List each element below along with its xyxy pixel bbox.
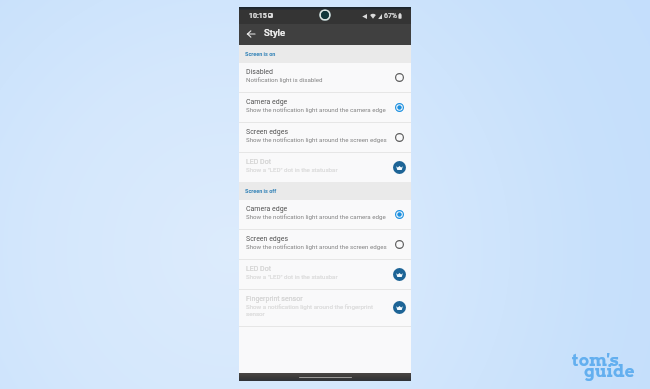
button[interactable]: LED Dot: [239, 260, 411, 289]
button[interactable]: Disabled: [239, 63, 411, 92]
button[interactable]: Screen edges: [239, 123, 411, 152]
staticText: Show a "LED" dot in the statusbar: [246, 273, 338, 280]
button[interactable]: Fingerprint sensor: [239, 290, 411, 326]
staticText: 67%: [384, 12, 397, 20]
staticText: Disabled: [246, 68, 274, 76]
staticText: Fingerprint sensor: [246, 295, 303, 303]
button[interactable]: Back: [242, 24, 260, 45]
staticText: Show a notification light around the fin…: [246, 303, 388, 317]
staticText: Camera edge: [246, 98, 288, 106]
staticText: Style: [264, 27, 286, 38]
button[interactable]: Camera edge: [239, 93, 411, 122]
staticText: Screen is on: [245, 51, 276, 57]
staticText: Screen is off: [245, 188, 277, 194]
staticText: Screen edges: [246, 235, 289, 243]
button[interactable]: Camera edge: [239, 200, 411, 229]
staticText: 10:15: [249, 12, 267, 20]
staticText: Notification light is disabled: [246, 76, 323, 83]
staticText: LED Dot: [246, 158, 271, 166]
staticText: guide: [584, 361, 635, 382]
button[interactable]: LED Dot: [239, 153, 411, 182]
staticText: Camera edge: [246, 205, 288, 213]
staticText: Show the notification light around the c…: [246, 213, 386, 220]
staticText: Show the notification light around the s…: [246, 136, 387, 143]
staticText: LED Dot: [246, 265, 271, 273]
staticText: Show the notification light around the c…: [246, 106, 386, 113]
staticText: Screen edges: [246, 128, 289, 136]
staticText: tom's: [572, 350, 619, 371]
staticText: Show a "LED" dot in the statusbar: [246, 166, 338, 173]
staticText: Show the notification light around the s…: [246, 243, 387, 250]
button[interactable]: Screen edges: [239, 230, 411, 259]
